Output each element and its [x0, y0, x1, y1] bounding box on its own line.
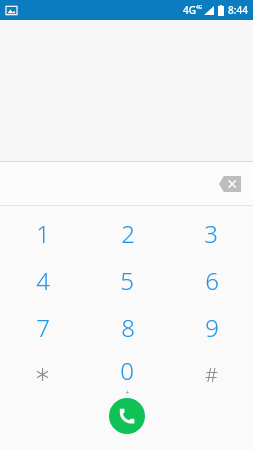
button[interactable] [0, 354, 85, 394]
staticText: 4 [36, 264, 50, 297]
button[interactable]: 2 [85, 217, 169, 251]
button[interactable]: 3 [169, 217, 253, 251]
staticText: 4G [196, 4, 203, 11]
staticText: 8:44 [228, 3, 248, 17]
button[interactable]: 7 [0, 311, 85, 345]
staticText: 3 [204, 217, 218, 250]
button[interactable]: # [169, 354, 253, 394]
button[interactable]: 9 [169, 311, 253, 345]
button[interactable]: 8 [85, 311, 169, 345]
staticText: 9 [205, 311, 219, 344]
staticText: 7 [36, 311, 50, 344]
staticText: 8 [121, 311, 135, 344]
button[interactable]: 0 [85, 354, 169, 394]
button[interactable]: 6 [169, 264, 253, 298]
staticText: 1 [36, 217, 50, 250]
button[interactable]: 1 [0, 217, 85, 251]
staticText: # [205, 361, 218, 388]
staticText: 2 [121, 217, 135, 250]
staticText: 6 [205, 264, 219, 297]
staticText: 5 [120, 264, 134, 297]
staticText: + [125, 388, 130, 394]
button[interactable]: Backspace [217, 173, 243, 195]
staticText: 0 [120, 354, 134, 387]
button[interactable]: Call [109, 398, 145, 434]
button[interactable]: 5 [85, 264, 169, 298]
staticText: 4G [183, 3, 196, 17]
button[interactable]: 4 [0, 264, 85, 298]
